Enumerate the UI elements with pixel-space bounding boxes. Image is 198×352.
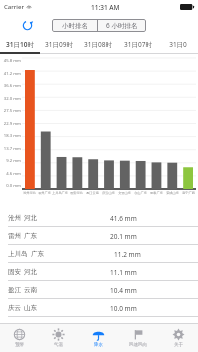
- button[interactable]: 气温: [39, 324, 78, 352]
- staticText: 32.0 mm: [0, 96, 21, 102]
- button[interactable]: 预警: [0, 324, 39, 352]
- staticText: 荣成山东: [166, 191, 179, 195]
- staticText: 10.4 mm: [110, 286, 137, 295]
- staticText: 气温: [54, 342, 63, 348]
- staticText: 6 小时排名: [106, 21, 138, 30]
- staticText: 小时排名: [62, 22, 88, 30]
- staticText: 上川岛: [8, 250, 28, 258]
- staticText: 13.7 mm: [0, 146, 21, 152]
- staticText: 31日07时: [124, 40, 152, 49]
- staticText: 盈江: [8, 286, 21, 294]
- staticText: 31日09时: [45, 40, 73, 49]
- staticText: 45.8 mm: [0, 58, 21, 64]
- staticText: 广东: [31, 250, 44, 258]
- staticText: 庆云山东: [102, 191, 115, 195]
- staticText: 河北: [24, 268, 37, 276]
- staticText: 4.6 mm: [0, 171, 21, 177]
- staticText: 10.0 mm: [110, 304, 137, 313]
- staticText: 固安河北: [70, 191, 83, 195]
- staticText: 庆云: [8, 304, 21, 312]
- staticText: 南宁广西: [182, 191, 195, 195]
- staticText: 22.9 mm: [0, 121, 21, 127]
- staticText: 沧州河北: [23, 191, 36, 195]
- button[interactable]: 小时排名: [52, 19, 97, 32]
- button[interactable]: 雷州: [0, 227, 198, 245]
- button[interactable]: 上川岛: [0, 245, 198, 263]
- staticText: 云南: [24, 286, 37, 294]
- staticText: 11.2 mm: [114, 250, 141, 259]
- button[interactable]: 沧州: [0, 209, 198, 227]
- staticText: 0.0 mm: [0, 183, 21, 189]
- button[interactable]: 31日09时: [39, 36, 78, 52]
- staticText: 盈江云南: [86, 191, 99, 195]
- staticText: 20.1 mm: [110, 232, 137, 241]
- staticText: 27.5 mm: [0, 108, 21, 114]
- staticText: 固安: [8, 268, 21, 276]
- staticText: 关于: [174, 342, 183, 348]
- button[interactable]: 6 小时排名: [98, 19, 146, 32]
- staticText: 18.3 mm: [0, 133, 21, 139]
- button[interactable]: Refresh: [18, 16, 36, 34]
- button[interactable]: 风速风向: [118, 324, 158, 352]
- staticText: 上川岛广东: [52, 191, 68, 195]
- staticText: 广东: [24, 232, 37, 240]
- staticText: 41.2 mm: [0, 71, 21, 77]
- staticText: 降水: [94, 342, 103, 348]
- staticText: 台山广东: [134, 191, 147, 195]
- staticText: 雷州: [8, 232, 21, 240]
- staticText: 31日0: [169, 40, 187, 49]
- staticText: 11:31 AM: [91, 3, 120, 12]
- staticText: 31日08时: [84, 40, 112, 49]
- staticText: 预警: [15, 342, 24, 348]
- staticText: Carrier: [4, 3, 24, 11]
- button[interactable]: 31日08时: [78, 36, 118, 52]
- staticText: 山东: [24, 304, 37, 312]
- staticText: 阳春广东: [150, 191, 163, 195]
- staticText: 文登山东: [118, 191, 131, 195]
- staticText: 风速风向: [129, 342, 147, 348]
- staticText: 9.2 mm: [0, 158, 21, 164]
- staticText: 沧州: [8, 214, 21, 222]
- button[interactable]: 31日07时: [118, 36, 158, 52]
- button[interactable]: 关于: [158, 324, 198, 352]
- staticText: 31日10时: [6, 40, 34, 49]
- button[interactable]: 31日0: [158, 36, 198, 52]
- staticText: 36.6 mm: [0, 83, 21, 89]
- staticText: 41.6 mm: [110, 214, 137, 223]
- button[interactable]: 盈江: [0, 281, 198, 299]
- staticText: 河北: [24, 214, 37, 222]
- staticText: 11.1 mm: [110, 268, 137, 277]
- staticText: 雷州广东: [38, 191, 51, 195]
- button[interactable]: 庆云: [0, 299, 198, 317]
- button[interactable]: 31日10时: [0, 36, 39, 52]
- button[interactable]: 固安: [0, 263, 198, 281]
- button[interactable]: 降水: [78, 324, 118, 352]
